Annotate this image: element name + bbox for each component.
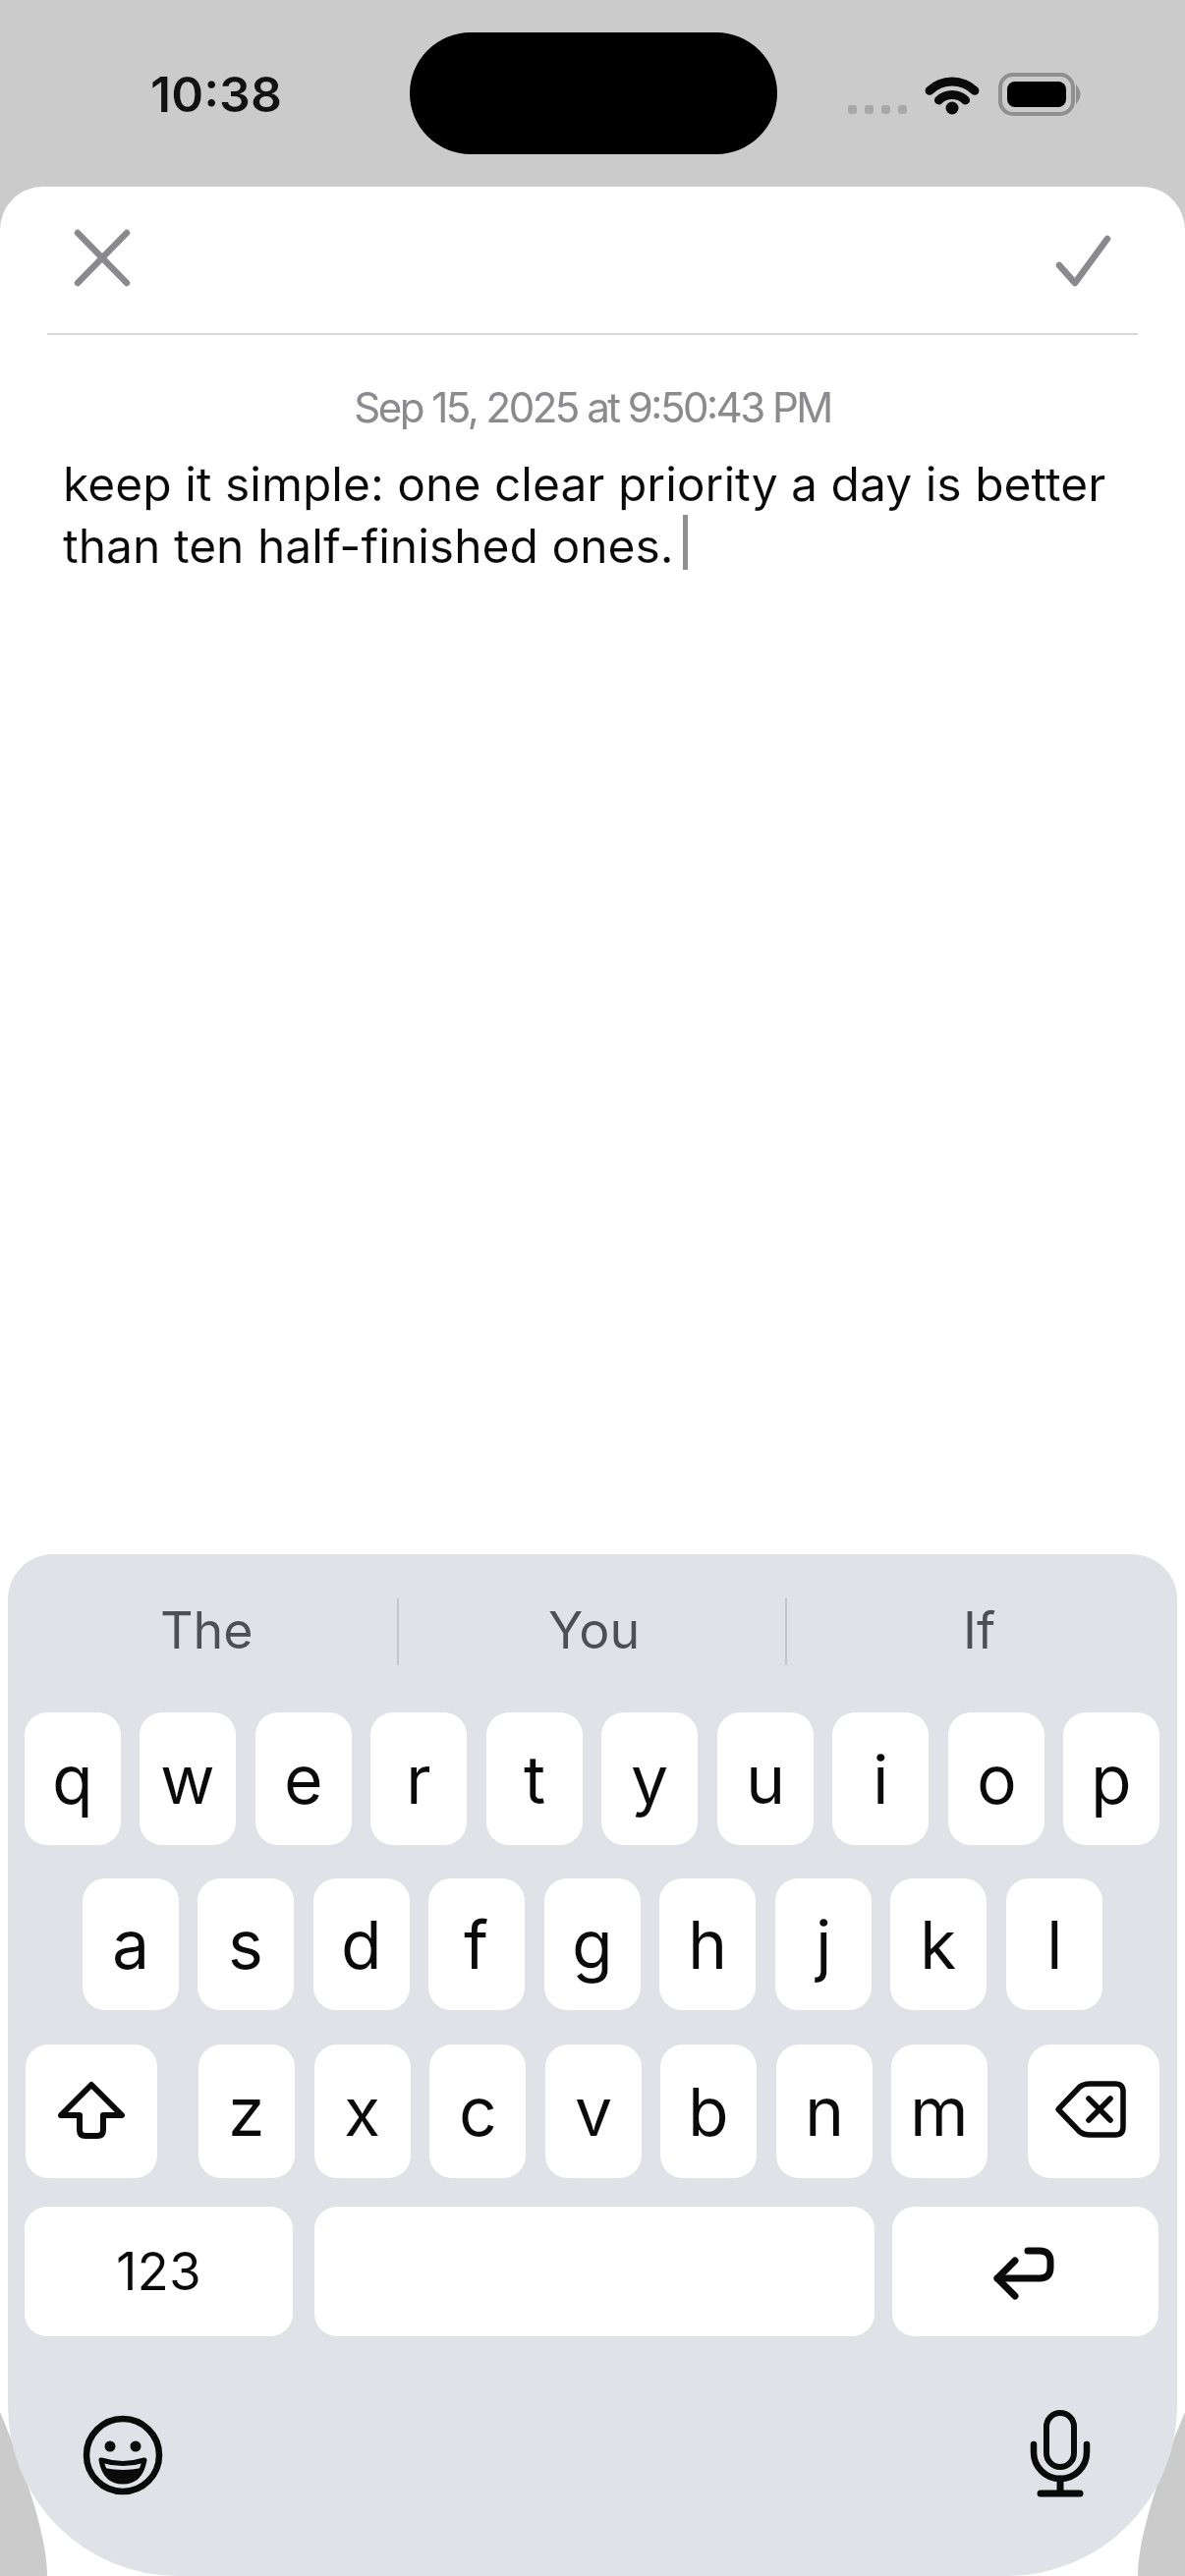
staticText: keep it simple: one clear priority a day… xyxy=(63,455,1106,575)
button[interactable] xyxy=(1028,2044,1159,2178)
staticText: k xyxy=(920,1904,957,1985)
staticText: m xyxy=(910,2071,969,2152)
button[interactable] xyxy=(892,2207,1158,2336)
button[interactable]: n xyxy=(776,2044,873,2178)
button[interactable]: The xyxy=(23,1596,390,1664)
button[interactable]: k xyxy=(890,1878,987,2010)
button[interactable] xyxy=(26,2044,157,2178)
button[interactable]: j xyxy=(775,1878,872,2010)
staticText: a xyxy=(112,1904,150,1985)
staticText: The xyxy=(160,1599,254,1661)
staticText: n xyxy=(805,2071,845,2152)
button[interactable]: c xyxy=(429,2044,526,2178)
staticText: y xyxy=(631,1739,669,1820)
button[interactable]: m xyxy=(891,2044,987,2178)
staticText: t xyxy=(524,1739,546,1820)
staticText: c xyxy=(459,2071,497,2152)
button[interactable] xyxy=(65,220,140,295)
staticText: p xyxy=(1091,1739,1132,1820)
staticText: i xyxy=(873,1739,889,1820)
button[interactable]: d xyxy=(313,1878,410,2010)
staticText: b xyxy=(688,2071,729,2152)
button[interactable]: b xyxy=(660,2044,757,2178)
button[interactable]: w xyxy=(140,1712,236,1845)
button[interactable] xyxy=(1045,226,1120,301)
staticText: 10:38 xyxy=(150,65,282,124)
staticText: e xyxy=(284,1739,323,1820)
staticText: If xyxy=(963,1599,996,1661)
button[interactable]: l xyxy=(1006,1878,1102,2010)
button[interactable]: z xyxy=(198,2044,295,2178)
staticText: x xyxy=(344,2071,381,2152)
staticText: h xyxy=(688,1904,728,1985)
button[interactable]: You xyxy=(411,1596,778,1664)
staticText: z xyxy=(228,2071,265,2152)
staticText: You xyxy=(548,1599,641,1661)
button[interactable]: x xyxy=(314,2044,411,2178)
staticText: j xyxy=(816,1904,832,1985)
staticText: d xyxy=(341,1904,382,1985)
button[interactable]: o xyxy=(948,1712,1044,1845)
staticText: q xyxy=(52,1739,93,1820)
button[interactable] xyxy=(80,2412,166,2498)
button[interactable]: y xyxy=(601,1712,698,1845)
button[interactable]: f xyxy=(428,1878,525,2010)
button[interactable]: v xyxy=(545,2044,642,2178)
staticText: w xyxy=(160,1739,215,1820)
button[interactable]: r xyxy=(370,1712,467,1845)
staticText: l xyxy=(1046,1904,1063,1985)
staticText: s xyxy=(228,1904,263,1985)
button[interactable]: 123 xyxy=(25,2207,293,2336)
button[interactable]: s xyxy=(197,1878,294,2010)
staticText: 123 xyxy=(116,2240,201,2303)
staticText: u xyxy=(746,1739,786,1820)
button[interactable]: a xyxy=(83,1878,179,2010)
button[interactable]: i xyxy=(832,1712,929,1845)
button[interactable]: e xyxy=(255,1712,352,1845)
staticText: v xyxy=(575,2071,613,2152)
button[interactable]: g xyxy=(544,1878,641,2010)
button[interactable]: q xyxy=(25,1712,121,1845)
staticText: r xyxy=(406,1739,431,1820)
button[interactable]: p xyxy=(1063,1712,1159,1845)
staticText: Sep 15, 2025 at 9:50:43 PM xyxy=(354,382,831,429)
button[interactable]: u xyxy=(717,1712,814,1845)
staticText: f xyxy=(464,1904,489,1985)
button[interactable]: h xyxy=(659,1878,756,2010)
button[interactable]: t xyxy=(486,1712,583,1845)
staticText: o xyxy=(977,1739,1017,1820)
staticText: g xyxy=(572,1904,613,1985)
button[interactable]: If xyxy=(796,1596,1163,1664)
button[interactable] xyxy=(1014,2407,1106,2501)
